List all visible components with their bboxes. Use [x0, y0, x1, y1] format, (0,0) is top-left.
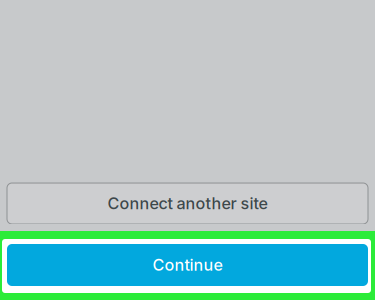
staticText: Connect another site [107, 194, 267, 213]
button[interactable]: Continue [7, 244, 368, 286]
staticText: Continue [152, 255, 222, 275]
button[interactable]: Connect another site [7, 183, 368, 224]
